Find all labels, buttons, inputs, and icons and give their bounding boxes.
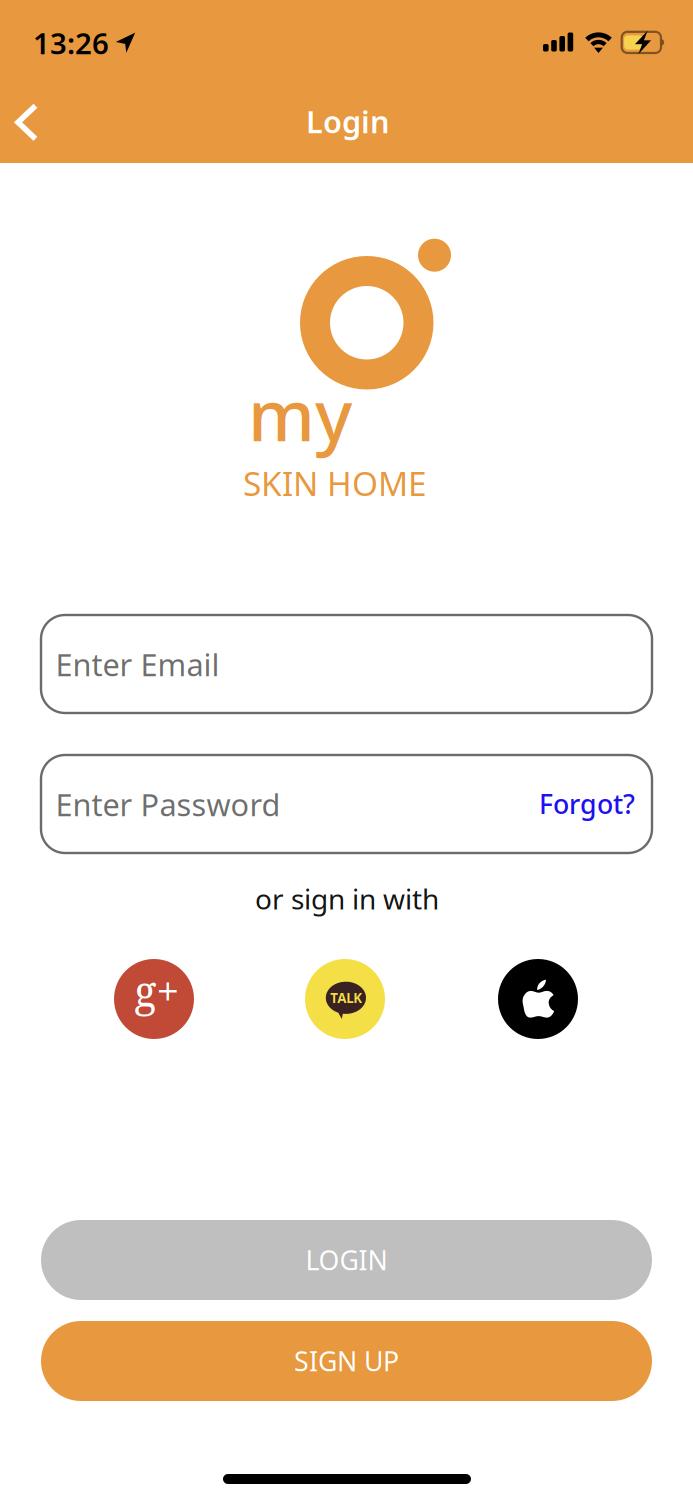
staticText: SIGN UP [294,1343,399,1379]
staticText: TALK [330,989,362,1007]
staticText: LOGIN [305,1242,387,1278]
staticText: Enter Password [55,784,280,825]
button[interactable]: Enter Email [41,615,652,713]
staticText: SKIN HOME [243,461,427,505]
button[interactable]: Sign in with Apple [498,959,578,1039]
staticText: Forgot? [539,786,635,821]
staticText: Login [306,101,390,142]
button[interactable]: Forgot? [529,768,645,839]
button[interactable]: Sign in with Google [114,959,194,1039]
button[interactable]: SIGN UP [41,1321,652,1401]
button[interactable]: Back [0,85,56,160]
button[interactable]: Enter Password [41,755,652,853]
staticText: my [248,367,352,461]
staticText: Enter Email [55,644,219,685]
button[interactable]: Sign in with Kakao Talk [305,959,385,1039]
staticText: 13:26 [33,23,109,62]
staticText: g+ [134,962,179,1019]
button[interactable]: LOGIN [41,1220,652,1300]
staticText: or sign in with [255,880,439,917]
